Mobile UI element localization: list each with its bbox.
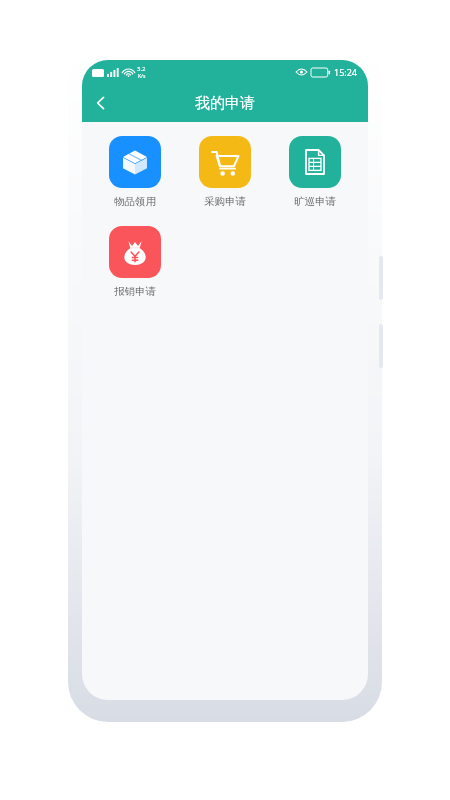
button[interactable]: 旷巡申请 [270,136,360,208]
button[interactable]: 采购申请 [180,136,270,208]
staticText: 旷巡申请 [294,195,336,208]
staticText: 报销申请 [114,285,156,298]
button[interactable]: Back [82,84,120,122]
button[interactable]: 物品领用 [90,136,180,208]
staticText: 15:24 [334,66,358,78]
staticText: K/s [138,73,146,80]
staticText: 3.2 [137,65,146,73]
button[interactable]: 报销申请 [90,226,180,298]
staticText: 物品领用 [114,195,156,208]
staticText: 我的申请 [195,94,255,113]
staticText: 采购申请 [204,195,246,208]
